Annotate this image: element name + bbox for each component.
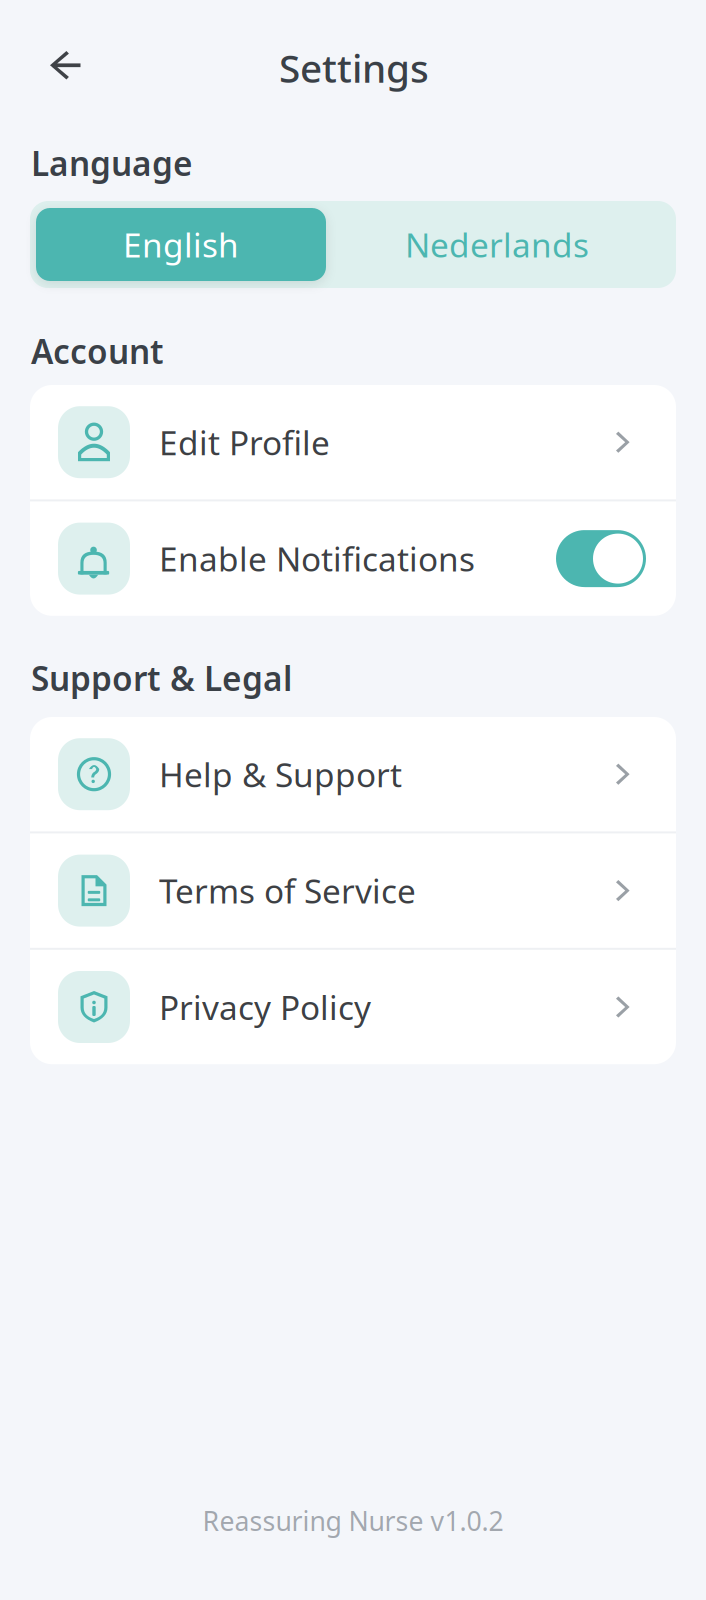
- staticText: English: [123, 222, 239, 267]
- staticText: Nederlands: [405, 222, 589, 267]
- button[interactable]: Back: [37, 37, 95, 93]
- staticText: Terms of Service: [159, 868, 416, 913]
- staticText: Support & Legal: [31, 656, 292, 700]
- staticText: Settings: [279, 42, 429, 93]
- staticText: Account: [31, 329, 164, 373]
- button[interactable]: Edit Profile: [30, 385, 676, 499]
- button[interactable]: Privacy Policy: [30, 950, 676, 1064]
- staticText: Privacy Policy: [159, 985, 371, 1029]
- button[interactable]: English: [36, 208, 326, 281]
- button[interactable]: Help & Support: [30, 717, 676, 831]
- staticText: Reassuring Nurse v1.0.2: [202, 1503, 503, 1538]
- staticText: Edit Profile: [159, 420, 330, 464]
- button[interactable]: Terms of Service: [30, 833, 676, 948]
- staticText: Language: [31, 141, 193, 185]
- staticText: Help & Support: [159, 752, 402, 796]
- staticText: Enable Notifications: [159, 536, 475, 581]
- button[interactable]: Nederlands: [326, 208, 668, 281]
- button[interactable]: Enable Notifications: [30, 501, 676, 616]
